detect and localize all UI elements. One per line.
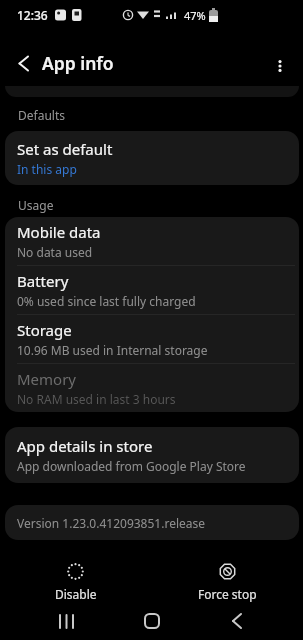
- staticText: Storage: [17, 320, 72, 340]
- staticText: Usage: [18, 197, 54, 213]
- button[interactable]: [194, 602, 279, 640]
- button[interactable]: [109, 602, 194, 640]
- staticText: In this app: [17, 161, 77, 177]
- staticText: 47%: [184, 8, 206, 23]
- button[interactable]: [11, 51, 35, 75]
- staticText: Disable: [55, 586, 97, 602]
- staticText: Version 1.23.0.412093851.release: [17, 515, 206, 531]
- staticText: No RAM used in last 3 hours: [17, 391, 176, 407]
- staticText: App info: [42, 51, 114, 75]
- button[interactable]: Battery: [5, 266, 299, 314]
- button[interactable]: Set as default: [5, 131, 299, 185]
- staticText: Mobile data: [17, 222, 101, 242]
- button[interactable]: Version 1.23.0.412093851.release: [5, 505, 299, 540]
- button[interactable]: App details in store: [5, 427, 299, 483]
- button[interactable]: Force stop: [151, 563, 303, 602]
- staticText: Memory: [17, 369, 77, 389]
- button[interactable]: [24, 602, 109, 640]
- button[interactable]: Memory: [5, 364, 299, 412]
- staticText: Battery: [17, 271, 69, 291]
- staticText: 10.96 MB used in Internal storage: [17, 342, 208, 358]
- staticText: App downloaded from Google Play Store: [17, 458, 246, 474]
- staticText: App details in store: [17, 436, 153, 456]
- staticText: 12:36: [17, 7, 48, 23]
- staticText: 0% used since last fully charged: [17, 293, 196, 309]
- button[interactable]: [266, 52, 293, 79]
- staticText: Force stop: [198, 586, 257, 602]
- staticText: Defaults: [18, 107, 65, 123]
- staticText: Set as default: [17, 139, 113, 159]
- button[interactable]: Storage: [5, 315, 299, 363]
- button[interactable]: Disable: [0, 563, 151, 602]
- button[interactable]: Mobile data: [5, 217, 299, 265]
- staticText: No data used: [17, 244, 93, 260]
